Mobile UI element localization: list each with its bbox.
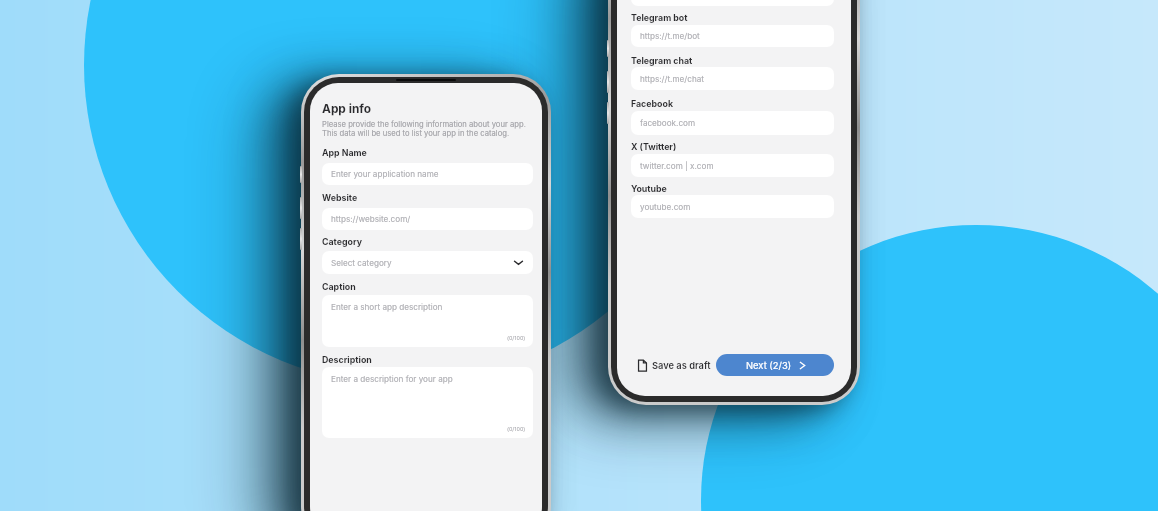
staticText: Website [322, 192, 358, 203]
staticText: https://website.com/ [331, 214, 411, 224]
staticText: Enter your application name [331, 169, 439, 179]
staticText: Please provide the following information… [322, 120, 526, 129]
staticText: Enter a description for your app [331, 374, 453, 384]
staticText: Facebook [631, 98, 673, 109]
button[interactable]: https://website.com/ [322, 208, 533, 230]
staticText: (0/100) [507, 335, 526, 342]
staticText: youtube.com [640, 202, 691, 212]
button[interactable]: twitter.com | x.com [631, 154, 834, 177]
staticText: This data will be used to list your app … [322, 129, 510, 138]
button[interactable]: https://t.me/bot [631, 25, 834, 47]
button[interactable]: Save as draft [631, 357, 713, 374]
button[interactable]: https://t.me/chat [631, 67, 834, 90]
staticText: Description [322, 354, 372, 365]
staticText: Youtube [631, 183, 667, 194]
staticText: Category [322, 236, 362, 247]
button[interactable]: Next (2/3) [716, 354, 834, 376]
other: Open category list [514, 258, 523, 267]
staticText: https://t.me/bot [640, 31, 700, 41]
staticText: Select category [331, 258, 392, 268]
staticText: App info [322, 101, 372, 115]
staticText: Caption [322, 281, 356, 292]
staticText: Enter a short app description [331, 302, 443, 312]
staticText: Telegram chat [631, 55, 693, 66]
button[interactable]: Select category [322, 251, 533, 274]
button[interactable]: youtube.com [631, 195, 834, 218]
button[interactable]: facebook.com [631, 111, 834, 135]
staticText: (0/100) [507, 426, 526, 433]
button[interactable]: Enter your application name [322, 163, 533, 185]
staticText: Next (2/3) [746, 360, 792, 371]
staticText: Save as draft [652, 360, 711, 371]
staticText: App Name [322, 147, 367, 158]
staticText: facebook.com [640, 118, 696, 128]
staticText: X (Twitter) [631, 141, 677, 152]
staticText: twitter.com | x.com [640, 161, 714, 171]
button[interactable]: Enter a short app description [322, 295, 533, 347]
button[interactable]: Enter a description for your app [322, 367, 533, 438]
staticText: Telegram bot [631, 12, 688, 23]
staticText: https://t.me/chat [640, 74, 704, 84]
